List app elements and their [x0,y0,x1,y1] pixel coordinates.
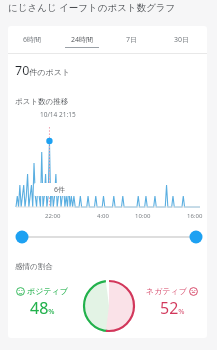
staticText: 52% [160,297,185,319]
staticText: 10:00 [135,212,151,220]
staticText: にじさんじ イーフトのポスト数グラフ [8,1,176,14]
staticText: 6件 [54,185,66,195]
staticText: 24時間 [71,35,94,45]
other: Positive sentiment [16,287,25,296]
button[interactable]: 24時間 [57,26,107,53]
staticText: 4:00 [97,212,109,220]
staticText: 48% [30,297,55,319]
staticText: 30日 [174,35,190,45]
staticText: 22:00 [45,212,61,220]
staticText: 6時間 [23,35,42,45]
button[interactable]: 30日 [157,26,207,53]
staticText: ネガティブ [146,286,187,296]
button[interactable]: 7日 [107,26,157,53]
staticText: 7日 [126,35,138,45]
staticText: 10/14 21:15 [40,110,76,119]
staticText: 70件のポスト [15,62,71,79]
button[interactable]: 6時間 [8,26,57,53]
staticText: 16:00 [187,212,203,220]
staticText: ポジティブ [27,286,68,296]
staticText: ポスト数の推移 [15,97,69,106]
staticText: 感情の割合 [15,262,53,271]
other: Negative sentiment [189,287,198,296]
